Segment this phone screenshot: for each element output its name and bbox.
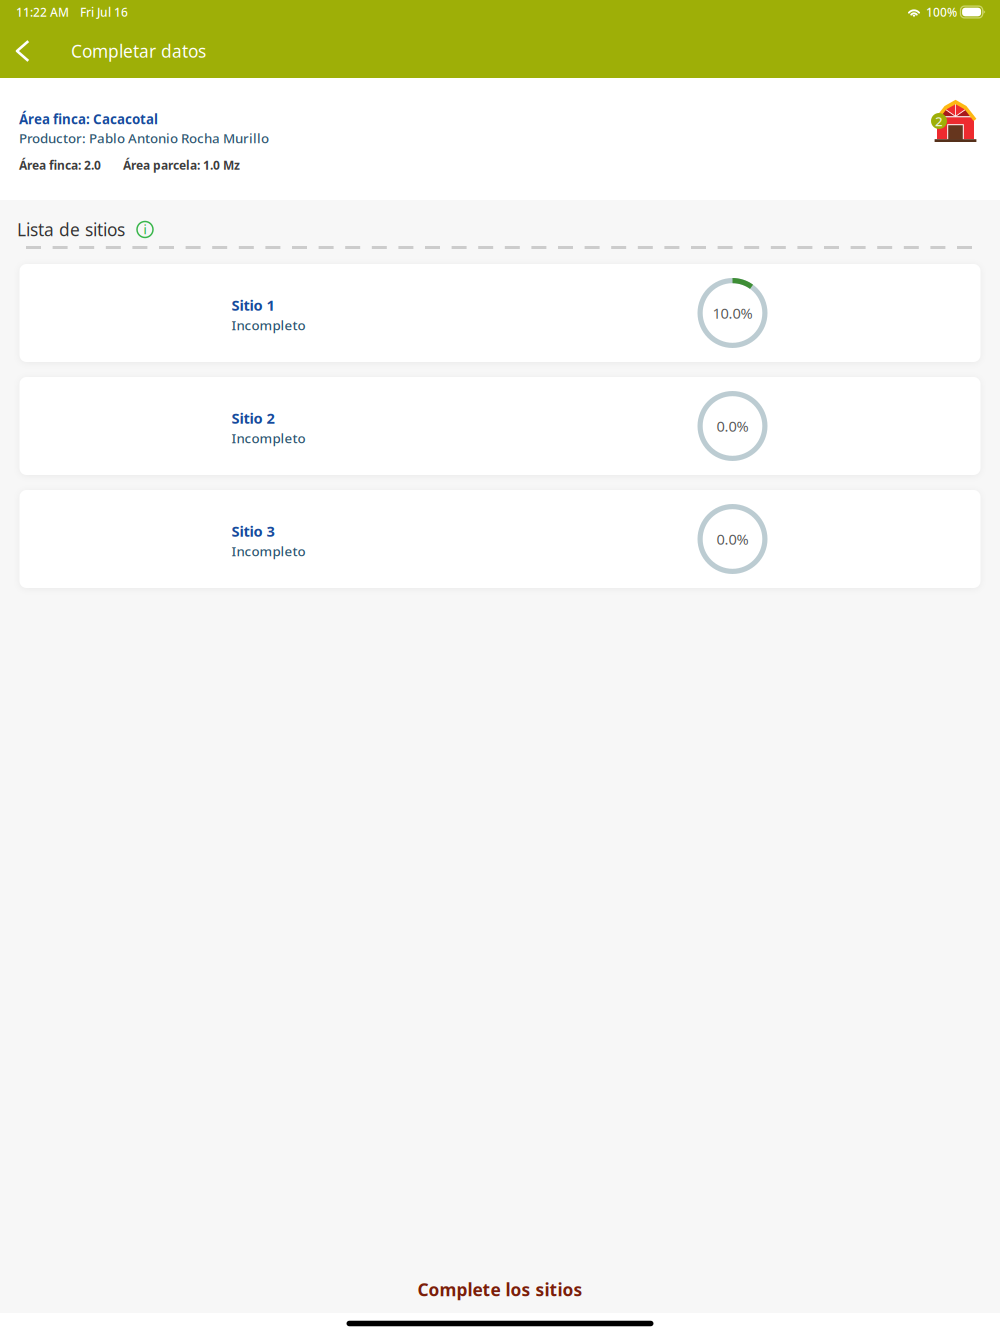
staticText: 0.0% <box>716 416 748 436</box>
staticText: Área finca: 2.0 <box>19 157 101 173</box>
staticText: Complete los sitios <box>417 1278 582 1301</box>
staticText: Incompleto <box>231 542 305 560</box>
staticText: Productor: Pablo Antonio Rocha Murillo <box>19 129 269 147</box>
button[interactable]: Sitio 2 <box>19 377 980 475</box>
button[interactable]: Back <box>2 29 42 73</box>
button[interactable]: Sitio 3 <box>19 490 980 588</box>
staticText: Fri Jul 16 <box>80 4 128 20</box>
staticText: Área finca: Cacacotal <box>19 110 158 128</box>
staticText: 10.0% <box>712 303 752 323</box>
staticText: 100% <box>926 4 957 20</box>
staticText: 2 <box>935 112 943 130</box>
staticText: Completar datos <box>71 39 206 62</box>
staticText: Sitio 2 <box>231 408 274 428</box>
staticText: 0.0% <box>716 529 748 549</box>
staticText: Sitio 1 <box>231 295 274 315</box>
staticText: Incompleto <box>231 429 305 447</box>
staticText: 11:22 AM <box>16 4 69 20</box>
staticText: Incompleto <box>231 316 305 334</box>
button[interactable]: Sitio 1 <box>19 264 980 362</box>
staticText: Lista de sitios <box>17 218 125 241</box>
staticText: Sitio 3 <box>231 521 274 541</box>
staticText: Área parcela: 1.0 Mz <box>123 157 240 173</box>
button[interactable]: Info <box>137 221 153 237</box>
staticText: i <box>143 221 146 237</box>
